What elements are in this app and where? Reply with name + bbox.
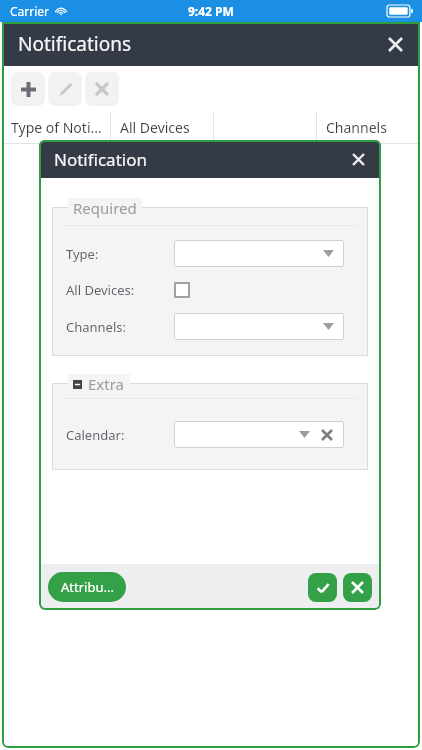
button[interactable]: Type of Noti... bbox=[2, 112, 110, 143]
staticText: Carrier bbox=[10, 3, 50, 19]
button[interactable]: Cancel bbox=[343, 573, 372, 602]
button[interactable]: Attribu... bbox=[48, 572, 126, 602]
button[interactable]: Close bbox=[376, 25, 414, 63]
staticText: Calendar: bbox=[66, 426, 125, 444]
button[interactable]: All Devices bbox=[111, 112, 213, 143]
staticText: 9:42 PM bbox=[188, 3, 234, 19]
staticText: Channels: bbox=[66, 318, 127, 336]
button[interactable]: Dropdown bbox=[174, 313, 344, 340]
button[interactable]: Dropdown bbox=[174, 421, 344, 448]
staticText: Type of Noti... bbox=[11, 118, 102, 137]
button[interactable]: Add bbox=[11, 72, 45, 106]
button[interactable]: Confirm bbox=[308, 573, 337, 602]
button[interactable]: Channels bbox=[317, 112, 420, 143]
staticText: Notification bbox=[54, 148, 147, 171]
button[interactable]: Edit bbox=[48, 72, 82, 106]
button[interactable]: Clear calendar bbox=[318, 426, 336, 444]
button[interactable]: All Devices checkbox bbox=[174, 282, 190, 298]
staticText: Attribu... bbox=[61, 578, 114, 596]
button[interactable]: Collapse Extra bbox=[73, 374, 125, 394]
staticText: Required bbox=[73, 198, 137, 218]
button[interactable]: Close dialog bbox=[342, 143, 374, 175]
staticText: Type: bbox=[66, 245, 99, 263]
staticText: Channels bbox=[326, 118, 387, 137]
button[interactable]: Dropdown bbox=[174, 240, 344, 267]
staticText: Extra bbox=[88, 374, 125, 394]
staticText: All Devices: bbox=[66, 281, 135, 299]
button[interactable]: Delete bbox=[85, 72, 119, 106]
button[interactable] bbox=[214, 112, 316, 143]
staticText: Notifications bbox=[18, 31, 132, 57]
staticText: All Devices bbox=[120, 118, 190, 137]
